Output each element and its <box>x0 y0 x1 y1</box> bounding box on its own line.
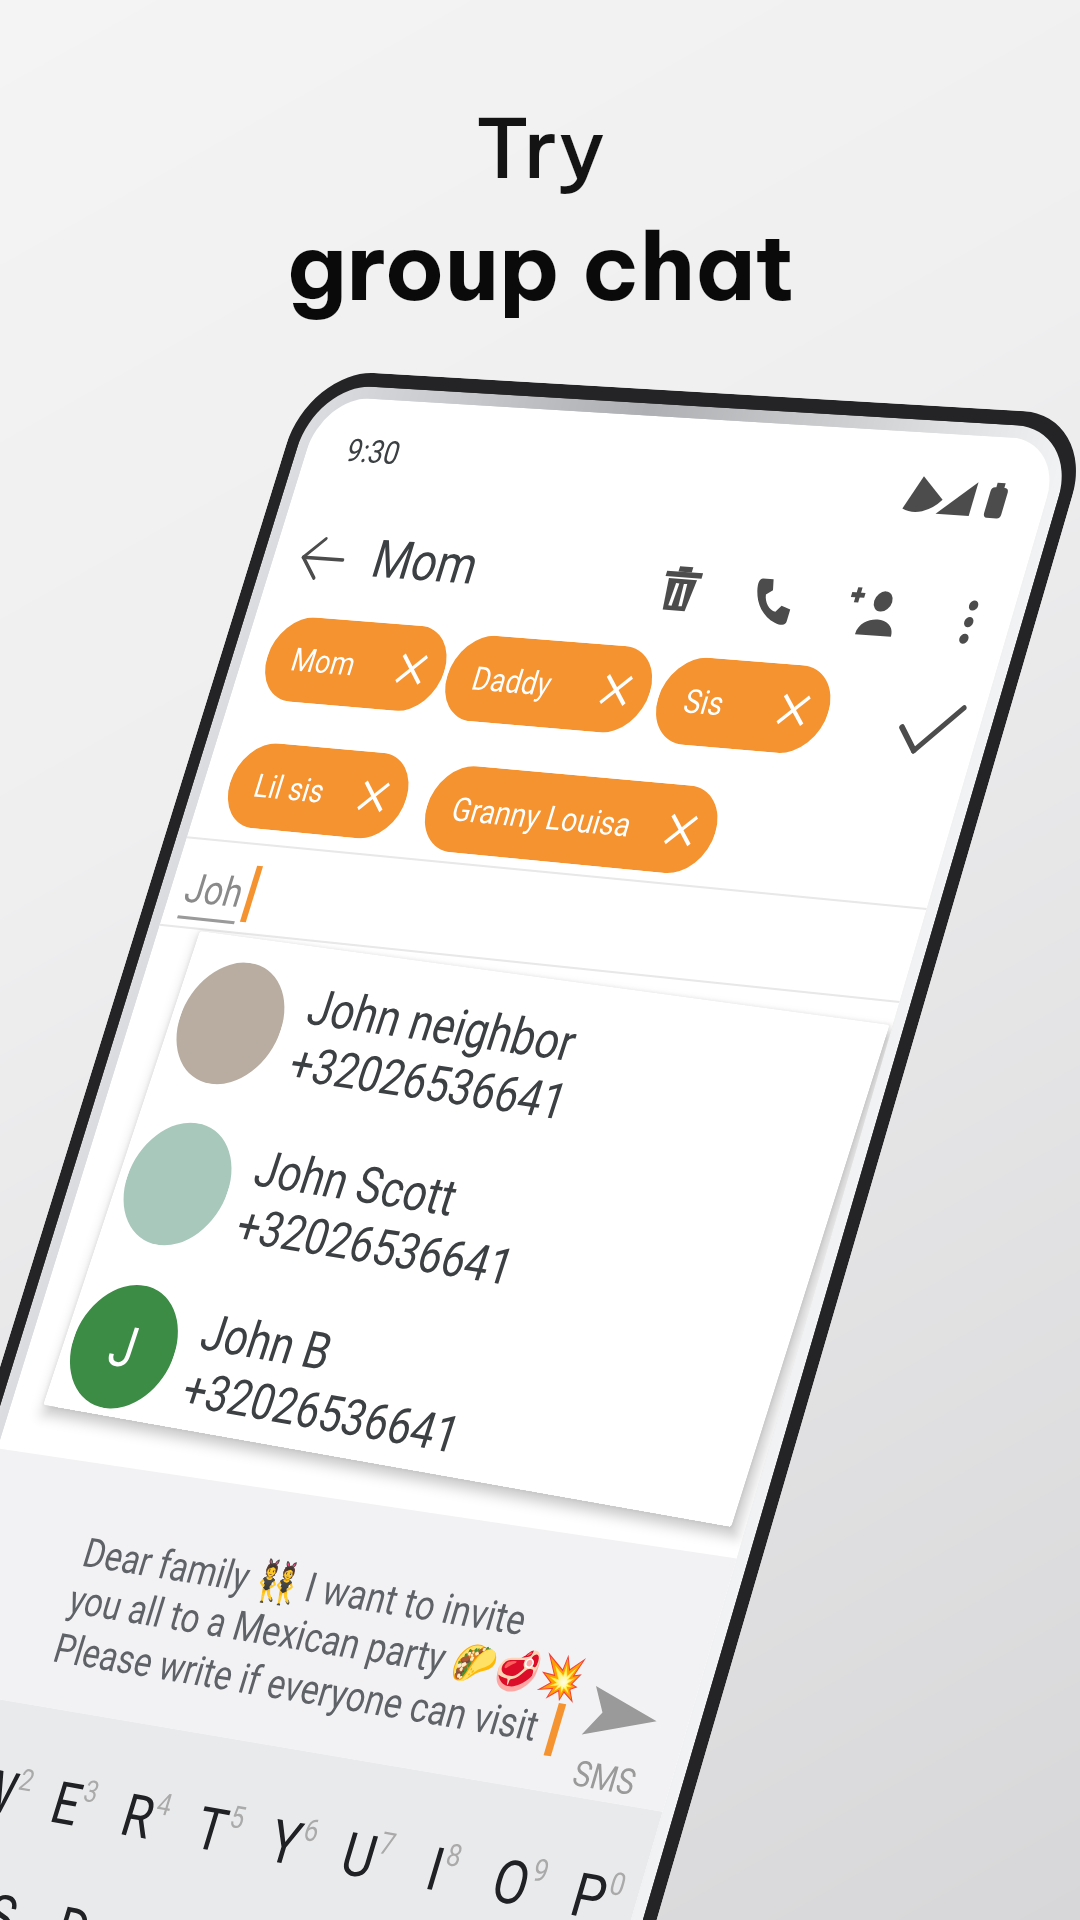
staticText: 4 <box>152 1786 177 1823</box>
staticText: 9 <box>528 1851 554 1890</box>
staticText: 3 <box>79 1773 104 1810</box>
staticText: Y <box>261 1806 310 1879</box>
staticText: 2 <box>15 1762 39 1799</box>
staticText: 5 <box>226 1799 250 1836</box>
button[interactable]: Send SMS <box>534 1675 697 1810</box>
staticText: SMS <box>568 1752 641 1804</box>
button[interactable]: Lil sis <box>217 740 419 842</box>
staticText: Mom <box>365 529 486 597</box>
staticText: D <box>47 1894 99 1920</box>
button[interactable]: T <box>164 1764 273 1897</box>
staticText: 6 <box>299 1812 324 1849</box>
staticText: 7 <box>375 1825 400 1863</box>
staticText: 9:30 <box>342 431 405 472</box>
staticText: John Scott <box>246 1139 467 1227</box>
staticText: Granny Louisa <box>447 790 637 845</box>
button[interactable]: W <box>0 1727 55 1857</box>
staticText: P <box>563 1859 616 1920</box>
staticText: John B <box>193 1302 341 1382</box>
button[interactable]: Delete <box>637 549 723 627</box>
button[interactable]: Add person <box>829 571 916 650</box>
button[interactable]: John Scott <box>88 1099 801 1357</box>
button[interactable]: P <box>540 1829 654 1920</box>
button[interactable]: U <box>311 1790 423 1920</box>
button[interactable]: Sis <box>645 655 841 756</box>
staticText: T <box>187 1794 236 1866</box>
staticText: +32026536641 <box>173 1359 471 1465</box>
button[interactable]: Call <box>731 561 818 639</box>
button[interactable]: Confirm <box>872 679 985 782</box>
staticText: Try <box>475 96 606 200</box>
staticText: group chat <box>286 208 795 324</box>
button[interactable]: I <box>386 1803 499 1920</box>
staticText: E <box>43 1769 90 1839</box>
button[interactable]: S <box>0 1851 55 1920</box>
button[interactable]: Granny Louisa <box>414 763 728 877</box>
staticText: Mom <box>286 640 361 683</box>
button[interactable]: Daddy <box>434 633 663 735</box>
staticText: Daddy <box>467 659 557 704</box>
staticText: J <box>100 1313 147 1382</box>
button[interactable]: D <box>19 1864 126 1920</box>
button[interactable]: Y <box>237 1777 347 1910</box>
staticText: 8 <box>442 1836 467 1875</box>
staticText: U <box>333 1819 386 1893</box>
button[interactable]: More options <box>924 582 1013 662</box>
staticText: Lil sis <box>249 766 330 811</box>
button[interactable]: R <box>91 1752 200 1883</box>
staticText: Please write if everyone can visit <box>48 1625 545 1752</box>
staticText: O <box>484 1845 539 1920</box>
staticText: Joh <box>179 864 250 917</box>
button[interactable]: Joh <box>177 859 263 925</box>
staticText: 0 <box>605 1865 631 1904</box>
staticText: John neighbor <box>298 978 587 1073</box>
staticText: I <box>419 1834 452 1905</box>
staticText: R <box>113 1781 163 1853</box>
button[interactable]: Mom <box>254 615 457 714</box>
button[interactable]: Back <box>281 521 364 596</box>
button[interactable]: E <box>19 1740 127 1870</box>
staticText: Dear family 👯 I want to invite <box>77 1529 533 1646</box>
button[interactable]: J <box>37 1260 747 1520</box>
button[interactable]: O <box>463 1816 576 1920</box>
staticText: +32026536641 <box>227 1196 525 1297</box>
staticText: S <box>0 1881 26 1920</box>
staticText: +32026536641 <box>280 1034 578 1131</box>
staticText: Sis <box>679 681 730 724</box>
button[interactable]: John neighbor <box>141 940 854 1188</box>
staticText: you all to a Mexican party 🌮🥩💥 <box>63 1576 590 1706</box>
staticText: W <box>0 1755 25 1828</box>
